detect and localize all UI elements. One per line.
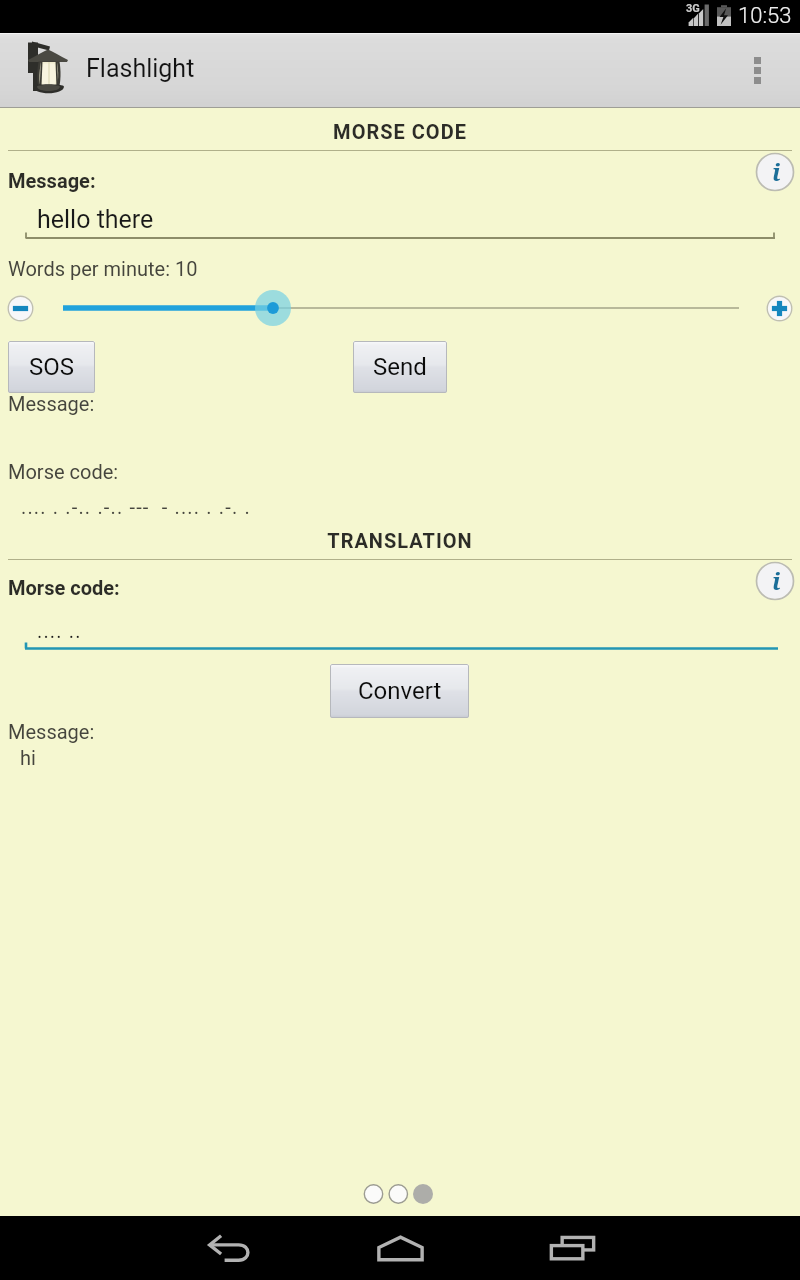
button[interactable]: Send bbox=[353, 341, 447, 393]
staticText: hi bbox=[20, 746, 36, 769]
staticText: 3G bbox=[686, 2, 700, 15]
staticText: Send bbox=[373, 353, 427, 381]
staticText: Morse code: bbox=[8, 460, 119, 483]
staticText: Message: bbox=[8, 169, 96, 192]
staticText: Words per minute: 10 bbox=[8, 257, 198, 280]
staticText: TRANSLATION bbox=[0, 529, 800, 552]
staticText: MORSE CODE bbox=[0, 120, 800, 143]
button[interactable]: More options bbox=[727, 33, 791, 108]
staticText: Convert bbox=[358, 677, 442, 705]
staticText: hello there bbox=[37, 205, 154, 234]
staticText: Message: bbox=[8, 720, 95, 743]
button[interactable]: Recent apps bbox=[537, 1216, 607, 1280]
staticText: .... .. bbox=[37, 619, 82, 642]
staticText: .... . .-.. .-.. --- - .... . .-. . bbox=[21, 495, 251, 518]
staticText: 10:53 bbox=[738, 3, 792, 29]
button[interactable]: Increase words per minute bbox=[761, 290, 797, 326]
staticText: Flashlight bbox=[86, 54, 195, 83]
staticText: i bbox=[772, 155, 781, 188]
button[interactable]: Decrease words per minute bbox=[2, 290, 38, 326]
button[interactable]: Back bbox=[194, 1216, 264, 1280]
button[interactable]: SOS bbox=[8, 341, 95, 393]
button[interactable]: Convert bbox=[330, 664, 469, 718]
button[interactable]: Info bbox=[753, 559, 797, 603]
staticText: i bbox=[772, 564, 781, 597]
staticText: Morse code: bbox=[8, 576, 120, 599]
button[interactable]: Home bbox=[365, 1216, 435, 1280]
staticText: Message: bbox=[8, 392, 95, 415]
button[interactable]: Info bbox=[753, 150, 797, 194]
staticText: SOS bbox=[29, 353, 75, 381]
